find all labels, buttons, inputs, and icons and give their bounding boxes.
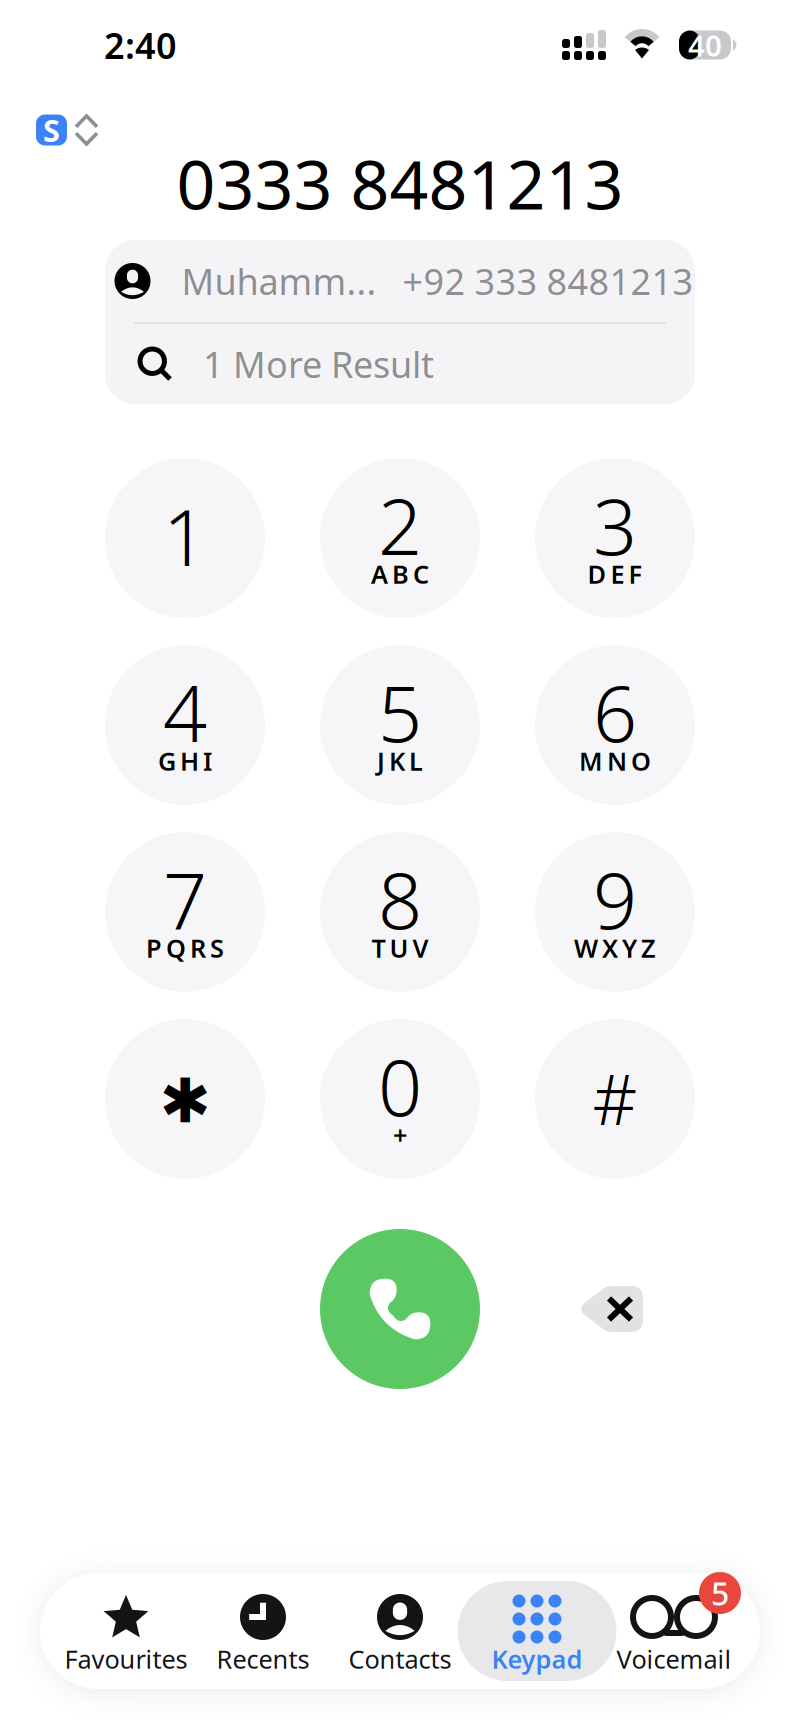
button[interactable]: 6	[535, 645, 695, 805]
staticText: ABC	[371, 557, 429, 591]
staticText: Favourites	[64, 1642, 187, 1676]
staticText: Keypad	[491, 1642, 582, 1676]
staticText: 6	[593, 661, 637, 763]
staticText: 5	[711, 1572, 729, 1614]
button[interactable]: 4	[105, 645, 265, 805]
staticText: 3	[593, 474, 637, 576]
button[interactable]: 5	[605, 1573, 742, 1689]
staticText: 7	[163, 848, 207, 950]
staticText: 1	[163, 485, 207, 587]
staticText: PQRS	[146, 931, 224, 965]
button[interactable]: Keypad	[468, 1573, 605, 1689]
staticText: 2	[378, 474, 422, 576]
button[interactable]: Select SIM	[31, 106, 102, 153]
button[interactable]: 3	[535, 458, 695, 618]
staticText: 1 More Result	[203, 340, 434, 388]
button[interactable]: 7	[105, 832, 265, 992]
staticText: WXYZ	[574, 931, 656, 965]
staticText: Recents	[216, 1642, 309, 1676]
staticText: ✱	[159, 1066, 210, 1136]
staticText: 5	[378, 661, 422, 763]
button[interactable]: 8	[320, 832, 480, 992]
staticText: 9	[593, 848, 637, 950]
staticText: 40	[688, 25, 722, 64]
button[interactable]: Favourites	[57, 1573, 194, 1689]
button[interactable]: Delete	[557, 1269, 667, 1349]
staticText: DEF	[587, 557, 642, 591]
button[interactable]: 2	[320, 458, 480, 618]
button[interactable]: Muhamm...	[105, 240, 695, 322]
staticText: S	[43, 110, 60, 150]
staticText: Contacts	[348, 1642, 451, 1676]
button[interactable]: 5	[320, 645, 480, 805]
staticText: TUV	[371, 931, 428, 965]
button[interactable]: 0	[320, 1019, 480, 1179]
button[interactable]: ✱	[105, 1019, 265, 1179]
button[interactable]: 1 More Result	[105, 324, 695, 404]
staticText: 4	[163, 661, 207, 763]
button[interactable]: 9	[535, 832, 695, 992]
button[interactable]: #	[535, 1019, 695, 1179]
button[interactable]: 1	[105, 458, 265, 618]
button[interactable]: Call	[320, 1229, 480, 1389]
staticText: 2:40	[104, 21, 177, 69]
staticText: +92 333 8481213	[402, 257, 693, 305]
staticText: Muhamm...	[181, 257, 376, 305]
staticText: +	[393, 1118, 407, 1152]
button[interactable]: Contacts	[331, 1573, 468, 1689]
staticText: GHI	[158, 744, 212, 778]
staticText: 0333 8481213	[176, 138, 623, 228]
staticText: #	[592, 1052, 637, 1144]
button[interactable]: Recents	[194, 1573, 331, 1689]
staticText: Voicemail	[616, 1642, 731, 1676]
staticText: 0	[378, 1035, 422, 1137]
staticText: JKL	[377, 744, 423, 778]
staticText: 8	[378, 848, 422, 950]
staticText: MNO	[579, 744, 651, 778]
